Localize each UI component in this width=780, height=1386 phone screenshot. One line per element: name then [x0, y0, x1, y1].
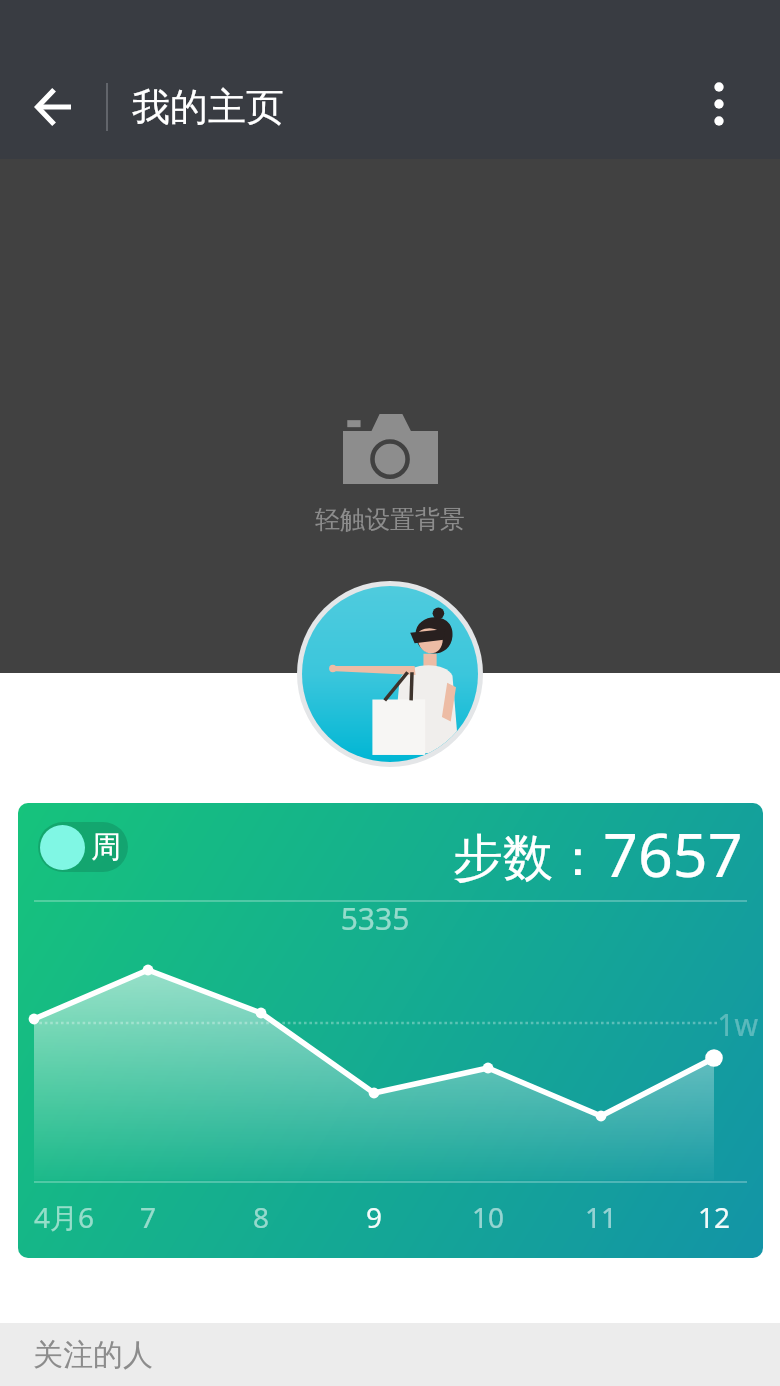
button[interactable]: 周 — [38, 822, 128, 872]
button[interactable]: Set background — [0, 159, 780, 673]
staticText: 周 — [91, 828, 121, 866]
staticText: 7 — [108, 1198, 188, 1236]
staticText: 8 — [221, 1198, 301, 1236]
button[interactable]: More options — [658, 54, 780, 159]
staticText: 我的主页 — [132, 83, 284, 131]
staticText: 7657 — [603, 812, 743, 895]
staticText: 1w — [678, 1004, 758, 1045]
button[interactable]: Profile photo — [297, 581, 483, 767]
staticText: 11 — [561, 1198, 641, 1236]
staticText: 9 — [334, 1198, 414, 1236]
staticText: 5335 — [335, 898, 415, 939]
button[interactable]: 周 — [18, 803, 763, 1258]
staticText: 轻触设置背景 — [315, 504, 465, 535]
button[interactable]: Back — [0, 54, 106, 159]
staticText: 4月6 — [34, 1198, 114, 1236]
staticText: 步数： — [453, 827, 603, 890]
staticText: 关注的人 — [33, 1336, 153, 1374]
button[interactable]: 关注的人 — [0, 1323, 780, 1386]
staticText: 10 — [448, 1198, 528, 1236]
staticText: 12 — [674, 1198, 754, 1236]
